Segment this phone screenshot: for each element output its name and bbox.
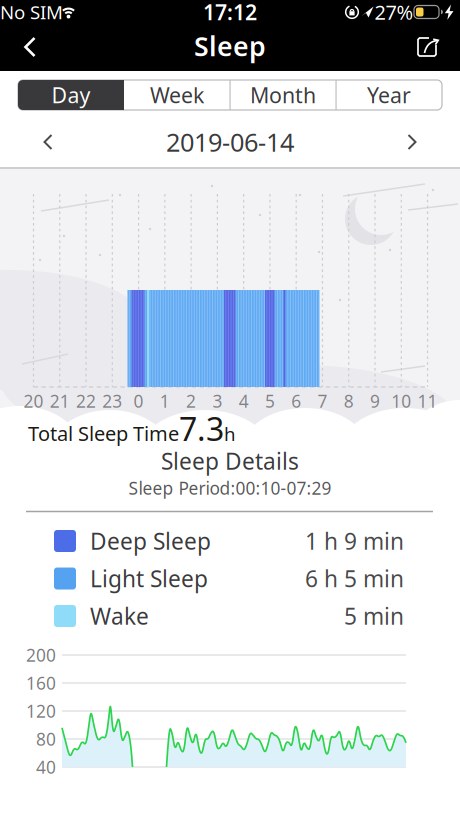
staticText: 10 [391, 389, 411, 412]
staticText: 1 h 9 min [305, 526, 404, 556]
button[interactable]: Back [8, 29, 52, 65]
button[interactable]: Share [405, 28, 449, 66]
staticText: Month [250, 81, 316, 109]
staticText: Light Sleep [90, 563, 208, 593]
button[interactable]: Day [18, 80, 124, 110]
staticText: 2 [186, 389, 196, 412]
staticText: Deep Sleep [90, 526, 211, 556]
staticText: 11 [418, 389, 438, 412]
staticText: 9 [370, 389, 380, 412]
staticText: 22 [76, 389, 96, 412]
staticText: Total Sleep Time7.3h [28, 407, 236, 450]
staticText: 27% [374, 0, 413, 25]
staticText: No SIM [0, 0, 63, 24]
staticText: 20 [23, 389, 43, 412]
staticText: 160 [26, 671, 56, 694]
staticText: 40 [36, 755, 56, 778]
staticText: 8 [344, 389, 354, 412]
staticText: Sleep [194, 28, 266, 64]
staticText: 1 [160, 389, 170, 412]
button[interactable]: Previous day [26, 124, 70, 160]
button[interactable]: Week [124, 80, 230, 110]
staticText: 17:12 [203, 0, 257, 26]
staticText: 2019-06-14 [166, 125, 294, 159]
staticText: 0 [134, 389, 144, 412]
staticText: 3 [212, 389, 222, 412]
staticText: 23 [102, 389, 122, 412]
button[interactable]: Year [336, 80, 442, 110]
staticText: 80 [36, 727, 56, 750]
staticText: 6 h 5 min [305, 563, 404, 593]
staticText: 7 [317, 389, 327, 412]
staticText: 21 [50, 389, 70, 412]
staticText: 5 min [344, 601, 404, 631]
staticText: Week [150, 81, 204, 109]
staticText: 5 [265, 389, 275, 412]
staticText: Wake [90, 601, 149, 631]
staticText: 4 [239, 389, 249, 412]
staticText: Sleep Period:00:10-07:29 [128, 476, 331, 499]
staticText: 200 [26, 643, 56, 666]
staticText: Day [51, 81, 90, 109]
staticText: Sleep Details [161, 446, 299, 476]
button[interactable]: Month [230, 80, 336, 110]
staticText: 6 [291, 389, 301, 412]
button[interactable]: Next day [390, 124, 434, 160]
staticText: 120 [26, 699, 56, 722]
staticText: Year [367, 81, 411, 109]
